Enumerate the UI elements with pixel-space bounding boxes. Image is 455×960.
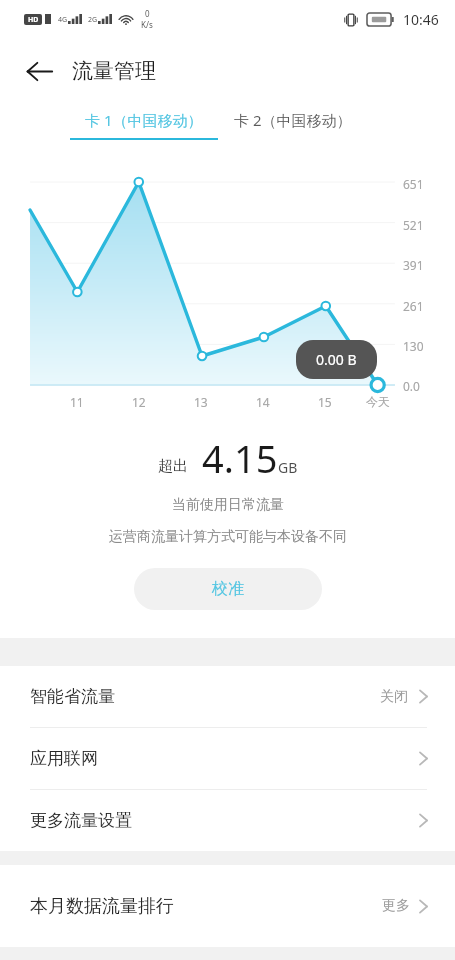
staticText: 当前使用日常流量 [172, 496, 284, 514]
button[interactable]: 智能省流量 [0, 666, 455, 727]
staticText: 0 [145, 8, 150, 19]
staticText: 卡 1（中国移动） [85, 110, 203, 130]
staticText: HD [28, 15, 39, 25]
staticText: 261 [403, 298, 424, 314]
button[interactable]: Back [16, 48, 62, 94]
staticText: 15 [318, 394, 332, 410]
staticText: 流量管理 [72, 58, 156, 84]
staticText: 130 [403, 338, 424, 354]
staticText: 14 [256, 394, 270, 410]
staticText: K/s [141, 19, 153, 30]
button[interactable]: 卡 1（中国移动） [70, 110, 218, 140]
staticText: 13 [194, 394, 208, 410]
button[interactable]: 更多流量设置 [0, 790, 455, 851]
staticText: 本月数据流量排行 [30, 895, 174, 918]
button[interactable]: 校准 [134, 568, 322, 610]
staticText: 4.15 [202, 432, 278, 484]
staticText: GB [278, 458, 298, 477]
staticText: 4G [58, 15, 68, 25]
staticText: 0.0 [403, 378, 420, 394]
staticText: 2G [88, 15, 98, 25]
staticText: 关闭 [380, 688, 408, 706]
staticText: 超出 [158, 457, 188, 476]
staticText: 12 [132, 394, 146, 410]
button[interactable]: 卡 2（中国移动） [234, 110, 352, 130]
staticText: 10:46 [403, 10, 439, 29]
button[interactable]: 本月数据流量排行 [0, 865, 455, 947]
staticText: 11 [70, 394, 84, 410]
staticText: 智能省流量 [30, 686, 115, 707]
staticText: 651 [403, 176, 424, 192]
staticText: 更多 [382, 897, 410, 915]
staticText: 卡 2（中国移动） [234, 110, 352, 130]
staticText: 应用联网 [30, 748, 98, 769]
button[interactable]: 应用联网 [0, 728, 455, 789]
staticText: 521 [403, 217, 424, 233]
staticText: 更多流量设置 [30, 810, 132, 831]
staticText: 校准 [212, 579, 244, 599]
staticText: 今天 [366, 394, 390, 409]
staticText: 391 [403, 257, 424, 273]
staticText: 运营商流量计算方式可能与本设备不同 [109, 528, 347, 546]
staticText: 0.00 B [316, 350, 357, 369]
